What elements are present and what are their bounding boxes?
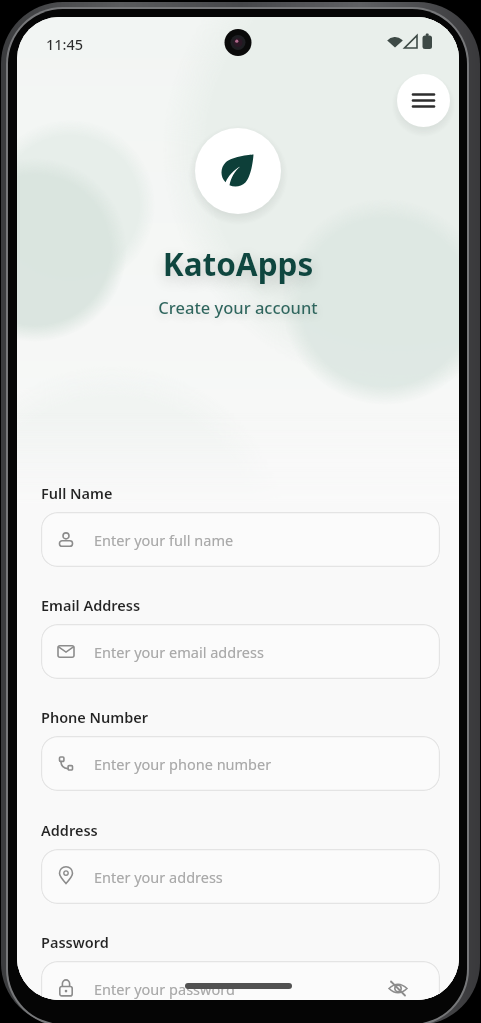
button[interactable]: Enter your password: [41, 961, 440, 1000]
button[interactable]: Enter your email address: [41, 624, 440, 679]
staticText: Enter your password: [94, 979, 235, 999]
staticText: 11:45: [46, 34, 84, 54]
staticText: Enter your full name: [94, 530, 234, 550]
staticText: Enter your phone number: [94, 754, 272, 774]
staticText: Enter your email address: [94, 642, 264, 662]
button[interactable]: Enter your full name: [41, 512, 440, 567]
staticText: Password: [41, 932, 109, 952]
button[interactable]: Enter your address: [41, 849, 440, 904]
staticText: Phone Number: [41, 707, 149, 727]
staticText: Full Name: [41, 483, 113, 503]
button[interactable]: [397, 74, 450, 127]
staticText: Enter your address: [94, 867, 223, 887]
staticText: Email Address: [41, 595, 141, 615]
button[interactable]: Enter your phone number: [41, 736, 440, 791]
staticText: Address: [41, 820, 98, 840]
staticText: KatoApps: [17, 242, 459, 285]
staticText: Create your account: [17, 296, 459, 318]
